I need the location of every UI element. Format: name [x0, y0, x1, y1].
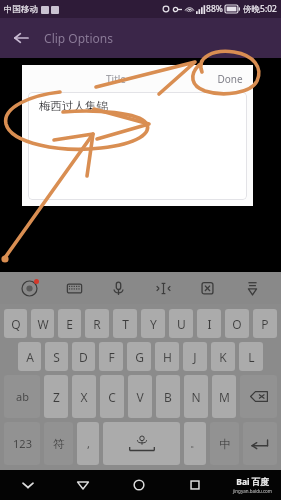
- staticText: F: [108, 349, 115, 365]
- staticText: 。: [190, 437, 200, 450]
- staticText: 中: [219, 437, 231, 451]
- staticText: G: [135, 349, 144, 365]
- button[interactable]: J: [183, 342, 207, 371]
- staticText: B: [164, 389, 172, 405]
- button[interactable]: [103, 422, 180, 465]
- staticText: R: [93, 316, 101, 332]
- button[interactable]: Done: [211, 68, 249, 90]
- button[interactable]: Move cursor: [148, 273, 178, 303]
- button[interactable]: Emoji: [14, 273, 44, 303]
- staticText: 梅西过人集锦: [39, 99, 108, 113]
- staticText: Clip Options: [44, 30, 113, 46]
- button[interactable]: 梅西过人集锦: [28, 92, 247, 200]
- button[interactable]: U: [169, 309, 193, 338]
- button[interactable]: B: [156, 375, 180, 418]
- button[interactable]: 123: [4, 422, 40, 465]
- button[interactable]: E: [58, 309, 81, 338]
- staticText: X: [80, 389, 88, 405]
- staticText: jingyan.baidu.com: [233, 488, 272, 494]
- staticText: J: [193, 349, 197, 365]
- staticText: I: [207, 316, 212, 332]
- button[interactable]: [240, 375, 277, 418]
- button[interactable]: N: [184, 375, 208, 418]
- staticText: C: [108, 389, 116, 405]
- button[interactable]: ,: [77, 422, 99, 465]
- button[interactable]: Y: [141, 309, 165, 338]
- button[interactable]: Home: [111, 470, 167, 500]
- staticText: 123: [13, 436, 32, 451]
- button[interactable]: I: [197, 309, 221, 338]
- button[interactable]: M: [212, 375, 236, 418]
- staticText: K: [219, 349, 227, 365]
- button[interactable]: L: [239, 342, 263, 371]
- staticText: 88%: [206, 3, 223, 15]
- button[interactable]: F: [99, 342, 123, 371]
- staticText: S: [53, 349, 60, 365]
- button[interactable]: 符: [44, 422, 73, 465]
- button[interactable]: W: [31, 309, 54, 338]
- button[interactable]: Keyboard: [59, 273, 89, 303]
- button[interactable]: Back: [6, 23, 36, 53]
- button[interactable]: G: [127, 342, 151, 371]
- button[interactable]: V: [128, 375, 152, 418]
- button[interactable]: A: [18, 342, 41, 371]
- staticText: E: [66, 316, 73, 332]
- button[interactable]: Z: [44, 375, 68, 418]
- button[interactable]: Clear text: [192, 273, 222, 303]
- button[interactable]: H: [155, 342, 179, 371]
- button[interactable]: Voice input: [103, 273, 133, 303]
- button[interactable]: Recents: [167, 470, 223, 500]
- staticText: Done: [217, 72, 243, 86]
- button[interactable]: 。: [184, 422, 206, 465]
- button[interactable]: Collapse keyboard: [0, 470, 55, 500]
- staticText: A: [26, 349, 34, 365]
- button[interactable]: ab: [4, 375, 40, 418]
- button[interactable]: X: [72, 375, 96, 418]
- staticText: 中国移动: [4, 4, 38, 15]
- staticText: W: [37, 316, 49, 332]
- button[interactable]: Q: [4, 309, 27, 338]
- staticText: N: [191, 389, 201, 405]
- staticText: O: [232, 316, 242, 332]
- button[interactable]: [243, 422, 277, 465]
- staticText: D: [79, 349, 88, 365]
- button[interactable]: 中: [210, 422, 239, 465]
- staticText: T: [122, 316, 129, 332]
- button[interactable]: Back: [55, 470, 111, 500]
- staticText: L: [248, 349, 255, 365]
- staticText: ,: [87, 436, 90, 451]
- staticText: U: [177, 316, 186, 332]
- staticText: Q: [11, 316, 21, 332]
- button[interactable]: K: [211, 342, 235, 371]
- staticText: Title: [106, 72, 126, 86]
- staticText: 符: [53, 437, 65, 451]
- button[interactable]: T: [113, 309, 137, 338]
- button[interactable]: O: [225, 309, 249, 338]
- staticText: ab: [16, 389, 29, 404]
- button[interactable]: D: [72, 342, 95, 371]
- button[interactable]: Hide keyboard: [237, 273, 267, 303]
- staticText: Bai 百度: [236, 476, 269, 488]
- button[interactable]: P: [253, 309, 277, 338]
- staticText: V: [136, 389, 144, 405]
- staticText: M: [219, 389, 230, 405]
- button[interactable]: R: [85, 309, 109, 338]
- staticText: P: [261, 316, 269, 332]
- staticText: Y: [150, 316, 157, 332]
- button[interactable]: S: [45, 342, 68, 371]
- staticText: 傍晚5:02: [243, 3, 277, 15]
- staticText: H: [163, 349, 172, 365]
- staticText: Z: [53, 389, 60, 405]
- button[interactable]: C: [100, 375, 124, 418]
